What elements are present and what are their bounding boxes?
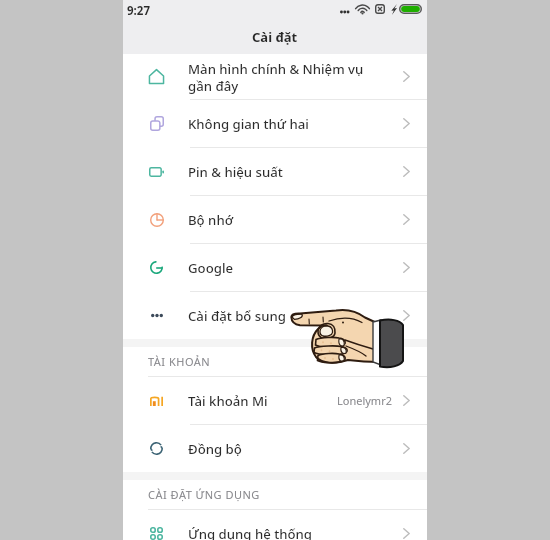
button[interactable]: Đồng bộ: [123, 425, 427, 472]
staticText: Bộ nhớ: [188, 211, 401, 229]
staticText: Pin & hiệu suất: [188, 163, 401, 181]
staticText: 9:27: [127, 3, 150, 19]
staticText: Cài đặt bổ sung: [188, 307, 401, 325]
staticText: Cài đặt: [252, 28, 298, 46]
staticText: Màn hình chính & Nhiệm vụ gần đây: [188, 60, 401, 94]
staticText: CÀI ĐẶT ỨNG DỤNG: [148, 487, 260, 502]
button[interactable]: Màn hình chính & Nhiệm vụ gần đây: [123, 54, 427, 99]
button[interactable]: Bộ nhớ: [123, 196, 427, 243]
staticText: Đồng bộ: [188, 440, 401, 458]
staticText: Tài khoản Mi: [188, 392, 335, 410]
button[interactable]: Pin & hiệu suất: [123, 148, 427, 195]
button[interactable]: Không gian thứ hai: [123, 100, 427, 147]
button[interactable]: Google: [123, 244, 427, 291]
staticText: Google: [188, 259, 401, 277]
staticText: Không gian thứ hai: [188, 115, 401, 133]
button[interactable]: Cài đặt bổ sung: [123, 292, 427, 339]
staticText: TÀI KHOẢN: [148, 354, 211, 369]
button[interactable]: Tài khoản Mi: [123, 377, 427, 424]
staticText: Lonelymr2: [337, 393, 392, 408]
button[interactable]: Ứng dụng hệ thống: [123, 510, 427, 540]
staticText: Ứng dụng hệ thống: [188, 525, 401, 540]
